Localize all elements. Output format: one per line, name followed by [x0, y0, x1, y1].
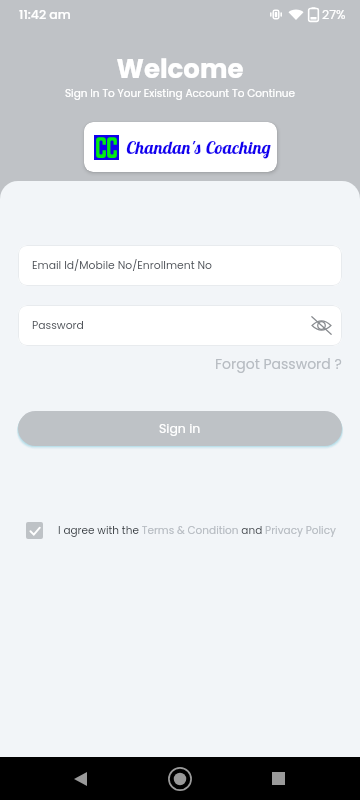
button[interactable]: Back: [56, 757, 104, 800]
button[interactable]: Forgot Password ?: [215, 354, 342, 374]
other: Show password: [310, 315, 333, 336]
staticText: Email Id/Mobile No/Enrollment No: [32, 258, 213, 273]
staticText: Sign in: [159, 420, 201, 437]
staticText: I agree with the Terms & Condition and P…: [58, 523, 336, 538]
staticText: 27%: [322, 6, 346, 23]
button[interactable]: Sign in: [18, 411, 342, 446]
staticText: 11:42 am: [19, 6, 71, 23]
staticText: Sign In To Your Existing Account To Cont…: [0, 86, 360, 101]
button[interactable]: Password: [32, 305, 333, 346]
staticText: Password: [32, 318, 84, 333]
staticText: Chandan's Coaching: [126, 136, 271, 159]
staticText: Welcome: [0, 51, 360, 87]
button[interactable]: I agree checkbox: [26, 522, 43, 539]
button[interactable]: Home: [156, 757, 204, 800]
button[interactable]: Recents: [254, 757, 302, 800]
button[interactable]: Email Id/Mobile No/Enrollment No: [32, 245, 333, 286]
